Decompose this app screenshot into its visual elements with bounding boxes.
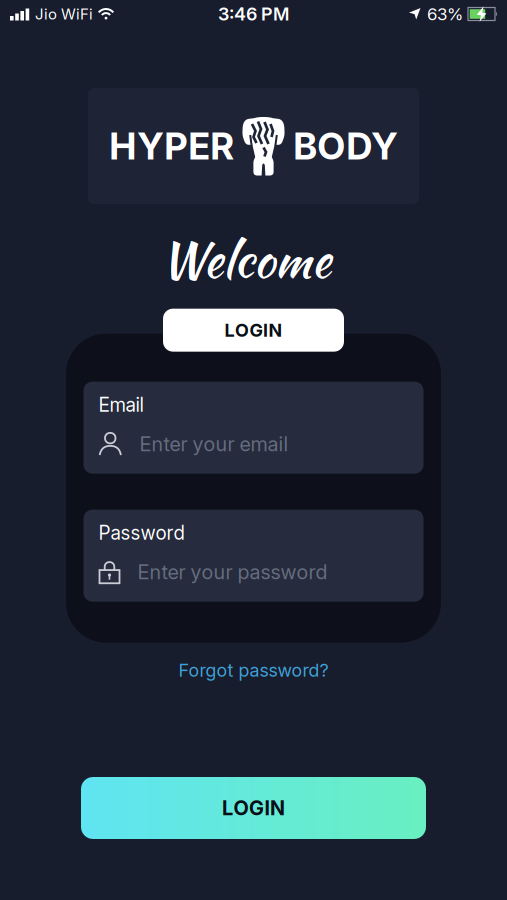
button[interactable]: LOGIN [163,309,344,352]
staticText: BODY [293,124,398,168]
staticText: Welcome [160,225,330,295]
staticText: Password [98,522,184,544]
staticText: Enter your password [137,560,327,584]
button[interactable]: Email [83,382,423,474]
staticText: LOGIN [224,319,282,341]
button[interactable]: Forgot password? [178,660,328,681]
button[interactable]: Password [83,510,423,602]
staticText: Email [98,394,143,416]
staticText: Enter your email [139,432,288,456]
staticText: 63% [427,4,463,24]
button[interactable]: LOGIN [81,777,426,839]
staticText: Jio WiFi [35,5,93,23]
staticText: Forgot password? [178,660,328,681]
staticText: HYPER [109,124,234,168]
staticText: LOGIN [222,796,285,820]
staticText: 3:46 PM [218,3,289,25]
